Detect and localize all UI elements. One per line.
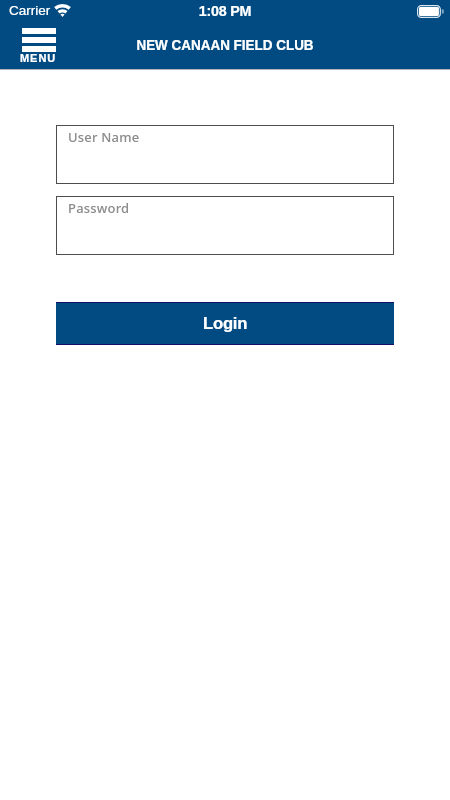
button[interactable]: User Name (56, 125, 394, 184)
staticText: NEW CANAAN FIELD CLUB (136, 36, 314, 53)
button[interactable]: Login (56, 302, 394, 345)
button[interactable]: Password (56, 196, 394, 255)
button[interactable]: Menu (17, 26, 57, 64)
staticText: Carrier (9, 3, 51, 18)
staticText: MENU (20, 52, 57, 64)
staticText: 1:08 PM (0, 3, 450, 19)
staticText: Login (203, 314, 248, 333)
staticText: Password (68, 199, 130, 217)
staticText: User Name (68, 128, 140, 146)
